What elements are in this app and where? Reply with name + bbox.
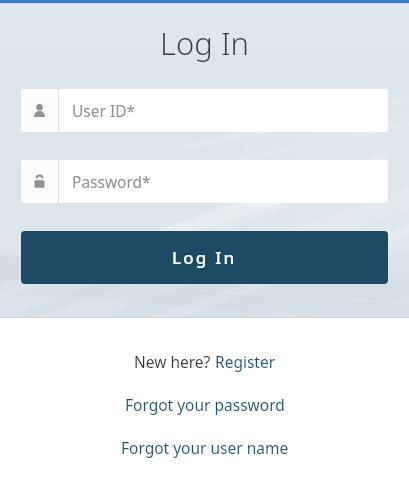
- staticText: Log In: [172, 246, 237, 269]
- button[interactable]: New here?: [0, 351, 409, 372]
- button[interactable]: Password*: [21, 160, 388, 203]
- staticText: User ID*: [72, 100, 136, 121]
- staticText: Forgot your user name: [121, 437, 289, 458]
- button[interactable]: Log In: [21, 231, 388, 284]
- staticText: Password*: [72, 171, 151, 192]
- staticText: Register: [215, 351, 276, 372]
- staticText: Forgot your password: [125, 394, 285, 415]
- button[interactable]: User ID*: [21, 89, 388, 132]
- staticText: Log In: [0, 22, 409, 64]
- staticText: New here?: [134, 351, 215, 372]
- button[interactable]: Forgot your user name: [0, 437, 409, 458]
- button[interactable]: Forgot your password: [0, 394, 409, 415]
